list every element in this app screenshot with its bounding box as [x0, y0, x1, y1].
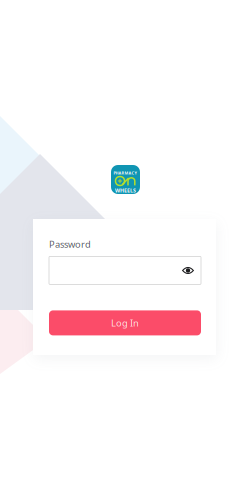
button[interactable]: Log In	[49, 310, 201, 335]
staticText: Log In	[111, 317, 139, 329]
staticText: PHARMACY	[113, 170, 137, 176]
staticText: WHEELS	[115, 187, 136, 194]
staticText: Password	[49, 238, 91, 250]
button[interactable]: Show password	[182, 257, 201, 284]
